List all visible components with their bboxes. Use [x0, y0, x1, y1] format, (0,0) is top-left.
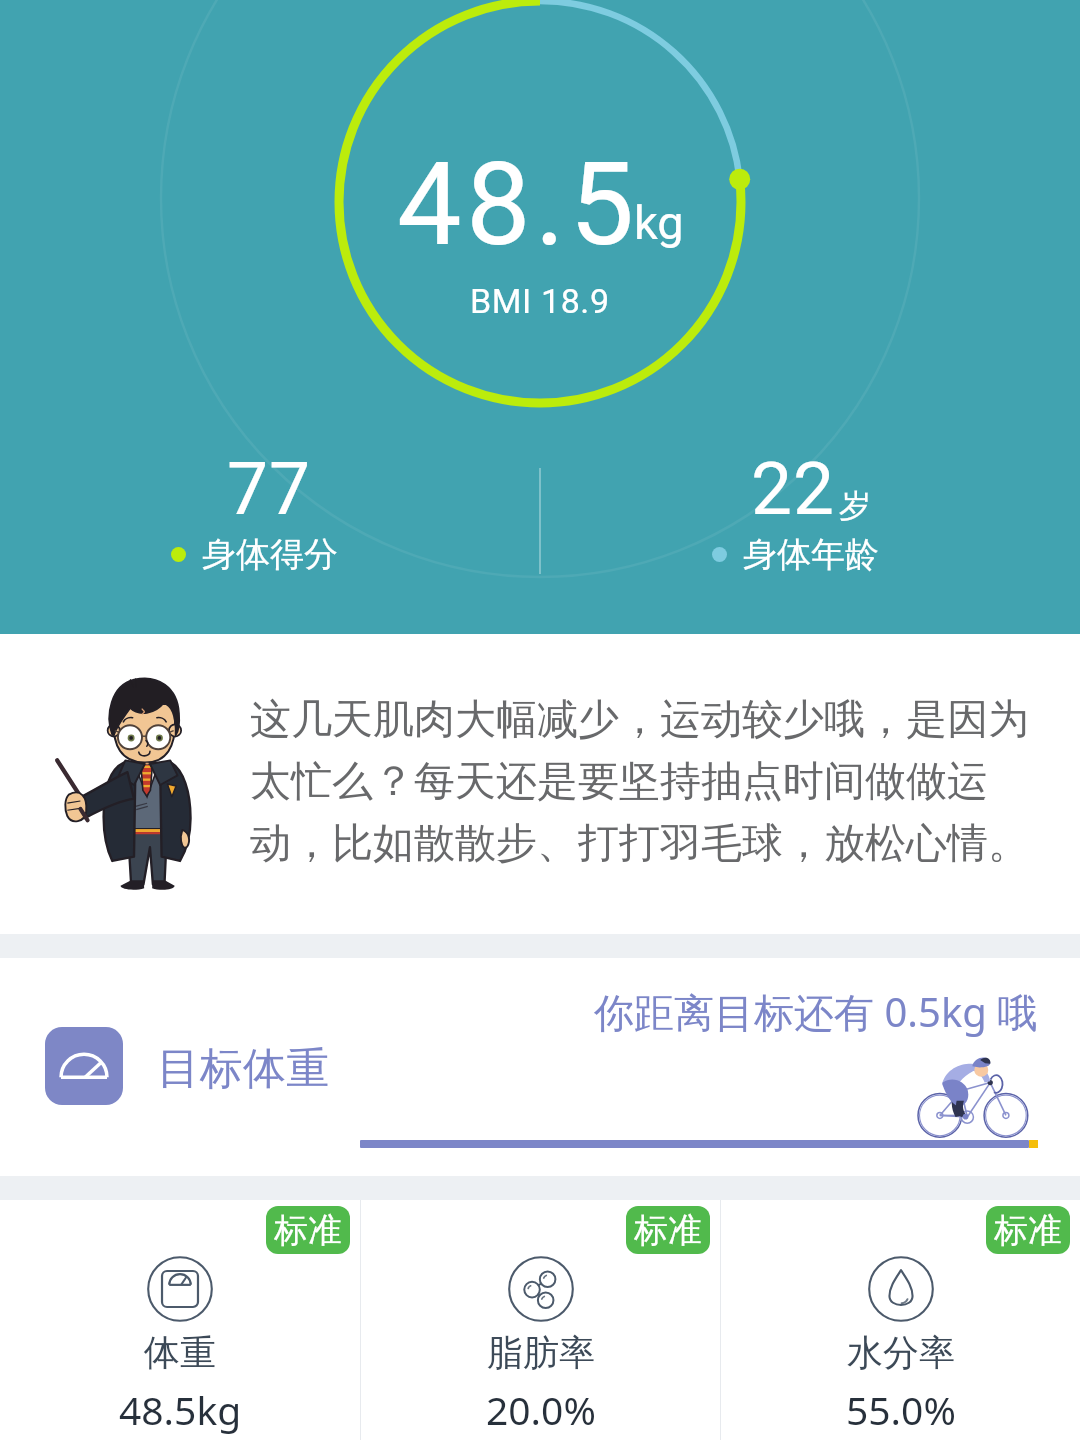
button[interactable]: 标准 [721, 1200, 1080, 1266]
staticText: 身体年龄 [743, 533, 879, 576]
staticText: 脂肪率 [487, 1330, 595, 1375]
staticText: 77 [227, 446, 312, 532]
button[interactable]: 这几天肌肉大幅减少，运动较少哦，是因为 太忙么？每天还是要坚持抽点时间做做运 动… [0, 634, 1080, 934]
staticText: 48.5kg [119, 1383, 242, 1436]
staticText: 这几天肌肉大幅减少，运动较少哦，是因为 太忙么？每天还是要坚持抽点时间做做运 动… [250, 694, 1050, 869]
staticText: 你距离目标还有 0.5kg 哦 [594, 984, 1038, 1039]
staticText: 体重 [144, 1330, 216, 1375]
button[interactable]: 77 [0, 446, 539, 606]
staticText: 标准 [994, 1209, 1062, 1252]
staticText: 水分率 [847, 1330, 955, 1375]
button[interactable]: Target weight [45, 1027, 123, 1105]
staticText: 目标体重 [157, 1042, 329, 1096]
staticText: 身体得分 [202, 533, 338, 576]
staticText: 20.0% [486, 1383, 596, 1436]
staticText: 55.0% [846, 1383, 956, 1436]
staticText: 标准 [634, 1209, 702, 1252]
staticText: 22 [751, 446, 836, 532]
staticText: BMI 18.9 [470, 281, 610, 321]
staticText: kg [634, 195, 684, 250]
button[interactable]: Target weight [0, 958, 1080, 1176]
button[interactable]: Weight details [339, 1, 741, 403]
staticText: 标准 [274, 1209, 342, 1252]
staticText: 岁 [839, 486, 871, 526]
button[interactable]: 标准 [0, 1200, 360, 1266]
button[interactable]: 标准 [361, 1200, 720, 1266]
button[interactable]: 22 [541, 446, 1080, 606]
staticText: 48.5 [397, 137, 639, 272]
